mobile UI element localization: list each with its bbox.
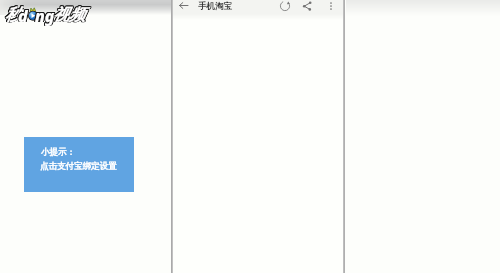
staticText: ng: [35, 5, 55, 27]
staticText: d: [17, 4, 27, 26]
staticText: d: [18, 5, 28, 27]
staticText: d: [18, 4, 28, 26]
button[interactable]: Back: [176, 0, 191, 11]
staticText: ng: [35, 4, 55, 26]
staticText: ng: [36, 4, 56, 26]
staticText: 秒: [4, 5, 20, 25]
staticText: 视频: [52, 5, 84, 25]
staticText: d: [19, 5, 29, 27]
button[interactable]: 手机淘宝: [198, 0, 234, 13]
staticText: d: [18, 5, 28, 27]
staticText: d: [18, 4, 28, 26]
staticText: 视频: [53, 5, 85, 25]
staticText: d: [18, 4, 28, 26]
staticText: d: [17, 4, 27, 26]
button[interactable]: 小提示：: [24, 137, 134, 192]
staticText: 秒: [4, 4, 20, 24]
staticText: 秒: [5, 5, 21, 25]
staticText: 视频: [53, 5, 85, 25]
staticText: d: [17, 5, 27, 27]
staticText: ng: [35, 4, 55, 26]
staticText: 视频: [54, 4, 86, 24]
staticText: d: [18, 5, 28, 27]
button[interactable]: Share: [300, 0, 313, 12]
staticText: ng: [36, 5, 56, 27]
staticText: d: [18, 5, 28, 27]
staticText: 秒: [4, 5, 20, 25]
staticText: 视频: [53, 4, 85, 24]
staticText: 秒: [5, 4, 21, 24]
staticText: 手机淘宝: [198, 1, 232, 12]
staticText: 秒: [5, 5, 21, 25]
staticText: d: [18, 4, 28, 26]
staticText: 视频: [54, 5, 86, 25]
staticText: ng: [34, 4, 54, 26]
staticText: 秒: [5, 4, 21, 24]
staticText: 视频: [53, 5, 85, 25]
staticText: ng: [34, 5, 54, 27]
staticText: d: [19, 4, 29, 26]
staticText: d: [19, 4, 29, 26]
staticText: 视频: [53, 4, 85, 24]
staticText: ng: [34, 4, 54, 26]
staticText: 秒: [5, 5, 21, 25]
staticText: ng: [35, 5, 55, 27]
staticText: 视频: [53, 5, 85, 25]
staticText: ng: [35, 5, 55, 27]
staticText: 视频: [53, 5, 85, 25]
staticText: 视频: [52, 5, 84, 25]
staticText: 秒: [4, 5, 20, 25]
staticText: ng: [35, 4, 55, 26]
staticText: ng: [34, 5, 54, 27]
staticText: 秒: [5, 4, 21, 24]
staticText: ng: [35, 5, 55, 27]
staticText: 秒: [4, 4, 20, 24]
staticText: 视频: [54, 4, 86, 24]
staticText: ng: [34, 5, 54, 27]
staticText: d: [17, 5, 27, 27]
staticText: d: [18, 5, 28, 27]
staticText: 秒: [4, 4, 20, 24]
staticText: 秒: [5, 5, 21, 25]
staticText: d: [17, 5, 27, 27]
staticText: 秒: [5, 5, 21, 25]
staticText: 视频: [52, 4, 84, 24]
staticText: 小提示：: [41, 147, 75, 158]
staticText: ng: [35, 4, 55, 26]
staticText: 秒: [5, 5, 21, 25]
staticText: ng: [36, 5, 56, 27]
staticText: 视频: [53, 4, 85, 24]
staticText: 视频: [53, 5, 85, 25]
staticText: 秒: [5, 5, 21, 25]
staticText: ng: [35, 5, 55, 27]
staticText: ng: [35, 4, 55, 26]
staticText: d: [18, 4, 28, 26]
staticText: 秒: [5, 5, 21, 25]
staticText: 视频: [52, 4, 84, 24]
staticText: ng: [35, 5, 55, 27]
staticText: ng: [35, 5, 55, 27]
staticText: 视频: [53, 5, 85, 25]
staticText: d: [18, 4, 28, 26]
staticText: 秒: [5, 4, 21, 24]
staticText: ng: [35, 5, 55, 27]
staticText: 视频: [53, 4, 85, 24]
staticText: d: [18, 5, 28, 27]
staticText: 视频: [53, 5, 85, 25]
staticText: 秒: [4, 5, 20, 25]
staticText: ng: [35, 4, 55, 26]
staticText: d: [18, 5, 28, 27]
staticText: ng: [36, 5, 56, 27]
button[interactable]: Refresh: [278, 0, 291, 12]
staticText: 视频: [54, 5, 86, 25]
staticText: d: [18, 5, 28, 27]
staticText: 视频: [53, 4, 85, 24]
staticText: 视频: [53, 5, 85, 25]
button[interactable]: More options: [324, 0, 337, 12]
staticText: 视频: [53, 4, 85, 24]
staticText: d: [19, 5, 29, 27]
staticText: 秒: [5, 4, 21, 24]
staticText: d: [19, 5, 29, 27]
staticText: 视频: [52, 5, 84, 25]
staticText: 秒: [4, 5, 20, 25]
